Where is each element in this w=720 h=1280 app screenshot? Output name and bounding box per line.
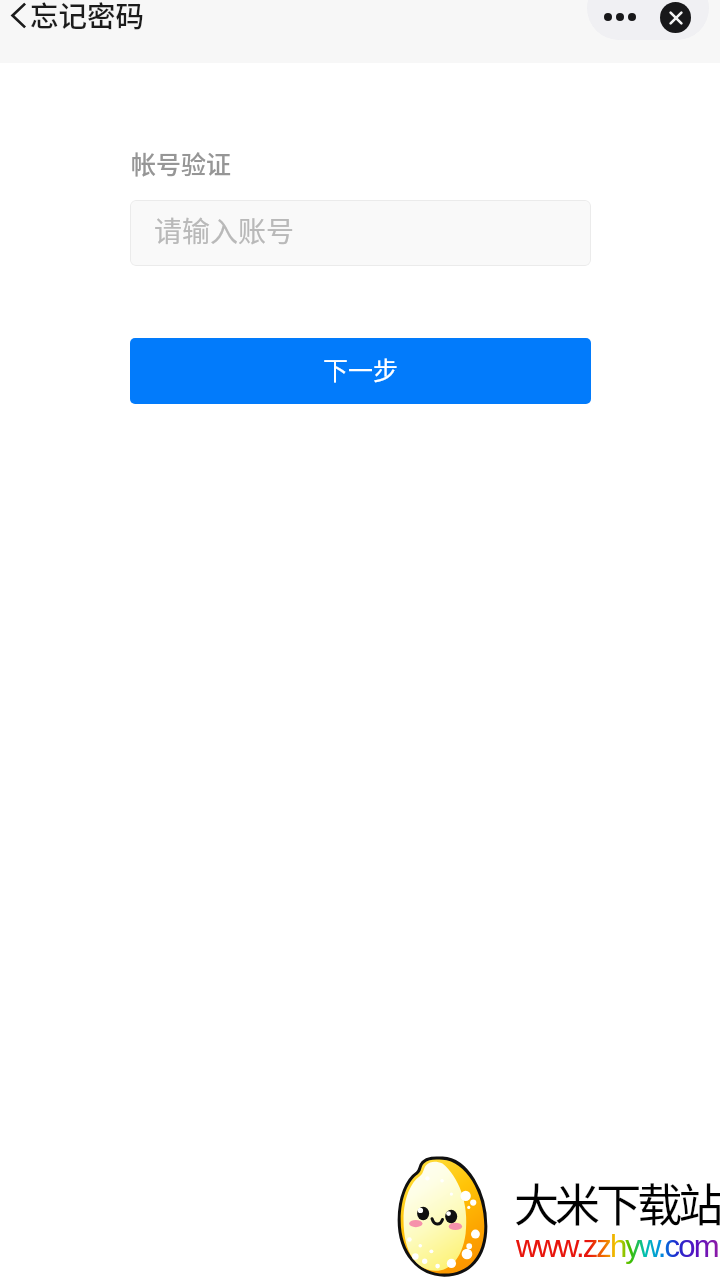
button[interactable]: 下一步	[130, 338, 591, 404]
staticText: 忘记密码	[30, 0, 145, 31]
staticText: 下一步	[323, 351, 399, 387]
staticText: 请输入账号	[154, 210, 295, 251]
button[interactable]: More options	[587, 0, 648, 40]
button[interactable]: 请输入账号	[130, 200, 591, 266]
staticText: 大米下载站	[514, 1170, 720, 1235]
button[interactable]: Close	[648, 0, 709, 40]
staticText: 帐号验证	[131, 145, 232, 181]
staticText: www.zzhyw.com	[516, 1229, 718, 1264]
button[interactable]: Back	[2, 0, 157, 35]
